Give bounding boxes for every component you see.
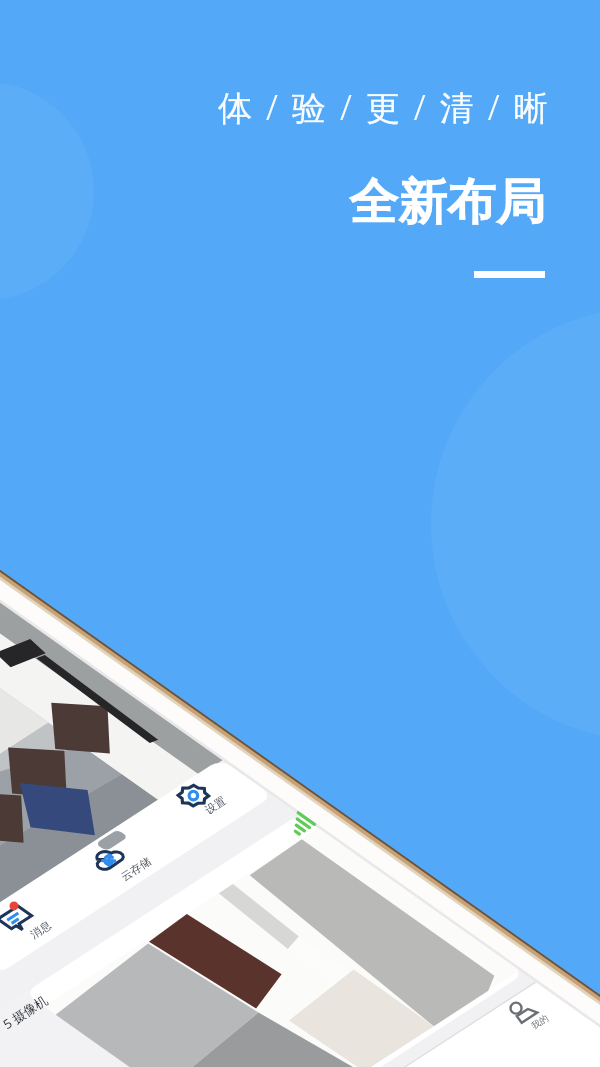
staticText: 我的 — [529, 1012, 550, 1031]
staticText: 消息 — [28, 918, 54, 942]
staticText: 云存储 — [118, 854, 153, 884]
staticText: 设置 — [202, 793, 228, 817]
staticText: 体 / 验 / 更 / 清 / 晰 — [218, 84, 551, 130]
staticText: 全新布局 — [349, 172, 545, 234]
staticText: 5 摄像机 — [0, 991, 51, 1033]
